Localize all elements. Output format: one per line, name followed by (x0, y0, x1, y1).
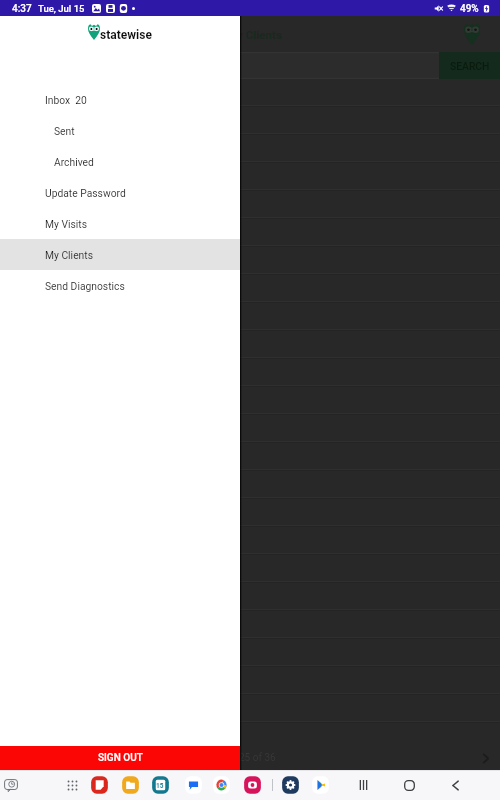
button[interactable]: SEARCH (439, 52, 500, 79)
staticText: Archived (54, 156, 94, 168)
button[interactable]: Send Diagnostics (0, 270, 240, 301)
button[interactable]: Archived (0, 146, 240, 177)
button[interactable] (0, 191, 500, 219)
button[interactable] (0, 219, 500, 247)
button[interactable] (0, 471, 500, 499)
button[interactable] (0, 695, 500, 723)
staticText: statewise (100, 28, 152, 42)
staticText: Send Diagnostics (45, 280, 125, 292)
button[interactable] (0, 303, 500, 331)
button[interactable]: Files (119, 774, 141, 796)
staticText: SIGN OUT (98, 752, 143, 764)
button[interactable]: Chrome (210, 774, 232, 796)
staticText: Tue, Jul 15 (38, 3, 85, 14)
button[interactable] (0, 331, 500, 359)
button[interactable]: Camera (241, 774, 263, 796)
button[interactable] (0, 583, 500, 611)
staticText: Update Password (45, 187, 126, 199)
button[interactable]: Sent (0, 115, 240, 146)
staticText: Sent (54, 125, 75, 137)
button[interactable]: Messages (182, 774, 204, 796)
button[interactable]: Home (398, 774, 420, 796)
staticText: Inbox 20 (45, 94, 87, 106)
button[interactable]: Calendar (149, 774, 171, 796)
staticText: My Clients (45, 249, 93, 261)
button[interactable] (0, 247, 500, 275)
button[interactable]: Play Store (309, 774, 331, 796)
button[interactable]: My Clients (0, 239, 240, 270)
staticText: 25 of 36 (239, 752, 276, 764)
staticText: SEARCH (450, 60, 490, 72)
button[interactable]: Settings (279, 774, 301, 796)
staticText: My Visits (45, 218, 87, 230)
button[interactable] (0, 52, 439, 79)
button[interactable] (0, 79, 500, 107)
button[interactable] (0, 359, 500, 387)
button[interactable] (0, 639, 500, 667)
button[interactable] (0, 163, 500, 191)
button[interactable]: 25 of 36 (239, 746, 309, 770)
button[interactable]: Clock (0, 774, 22, 796)
staticText: 15 (156, 782, 164, 790)
button[interactable] (0, 443, 500, 471)
button[interactable] (0, 135, 500, 163)
button[interactable]: My Visits (0, 208, 240, 239)
button[interactable]: Recent apps (352, 774, 374, 796)
button[interactable] (0, 499, 500, 527)
staticText: My Clients (227, 28, 282, 41)
staticText: 49% (460, 3, 479, 15)
button[interactable]: Statewise (461, 22, 483, 46)
button[interactable]: SIGN OUT (0, 746, 240, 770)
button[interactable]: All apps (61, 774, 83, 796)
button[interactable] (0, 415, 500, 443)
button[interactable] (0, 611, 500, 639)
button[interactable]: Update Password (0, 177, 240, 208)
button[interactable] (0, 555, 500, 583)
button[interactable]: Back (444, 774, 466, 796)
button[interactable]: Inbox 20 (0, 84, 240, 115)
button[interactable] (0, 387, 500, 415)
button[interactable] (0, 107, 500, 135)
button[interactable] (0, 275, 500, 303)
button[interactable] (0, 667, 500, 695)
button[interactable] (0, 527, 500, 555)
staticText: 4:37 (12, 3, 32, 15)
button[interactable]: Keep (88, 774, 110, 796)
